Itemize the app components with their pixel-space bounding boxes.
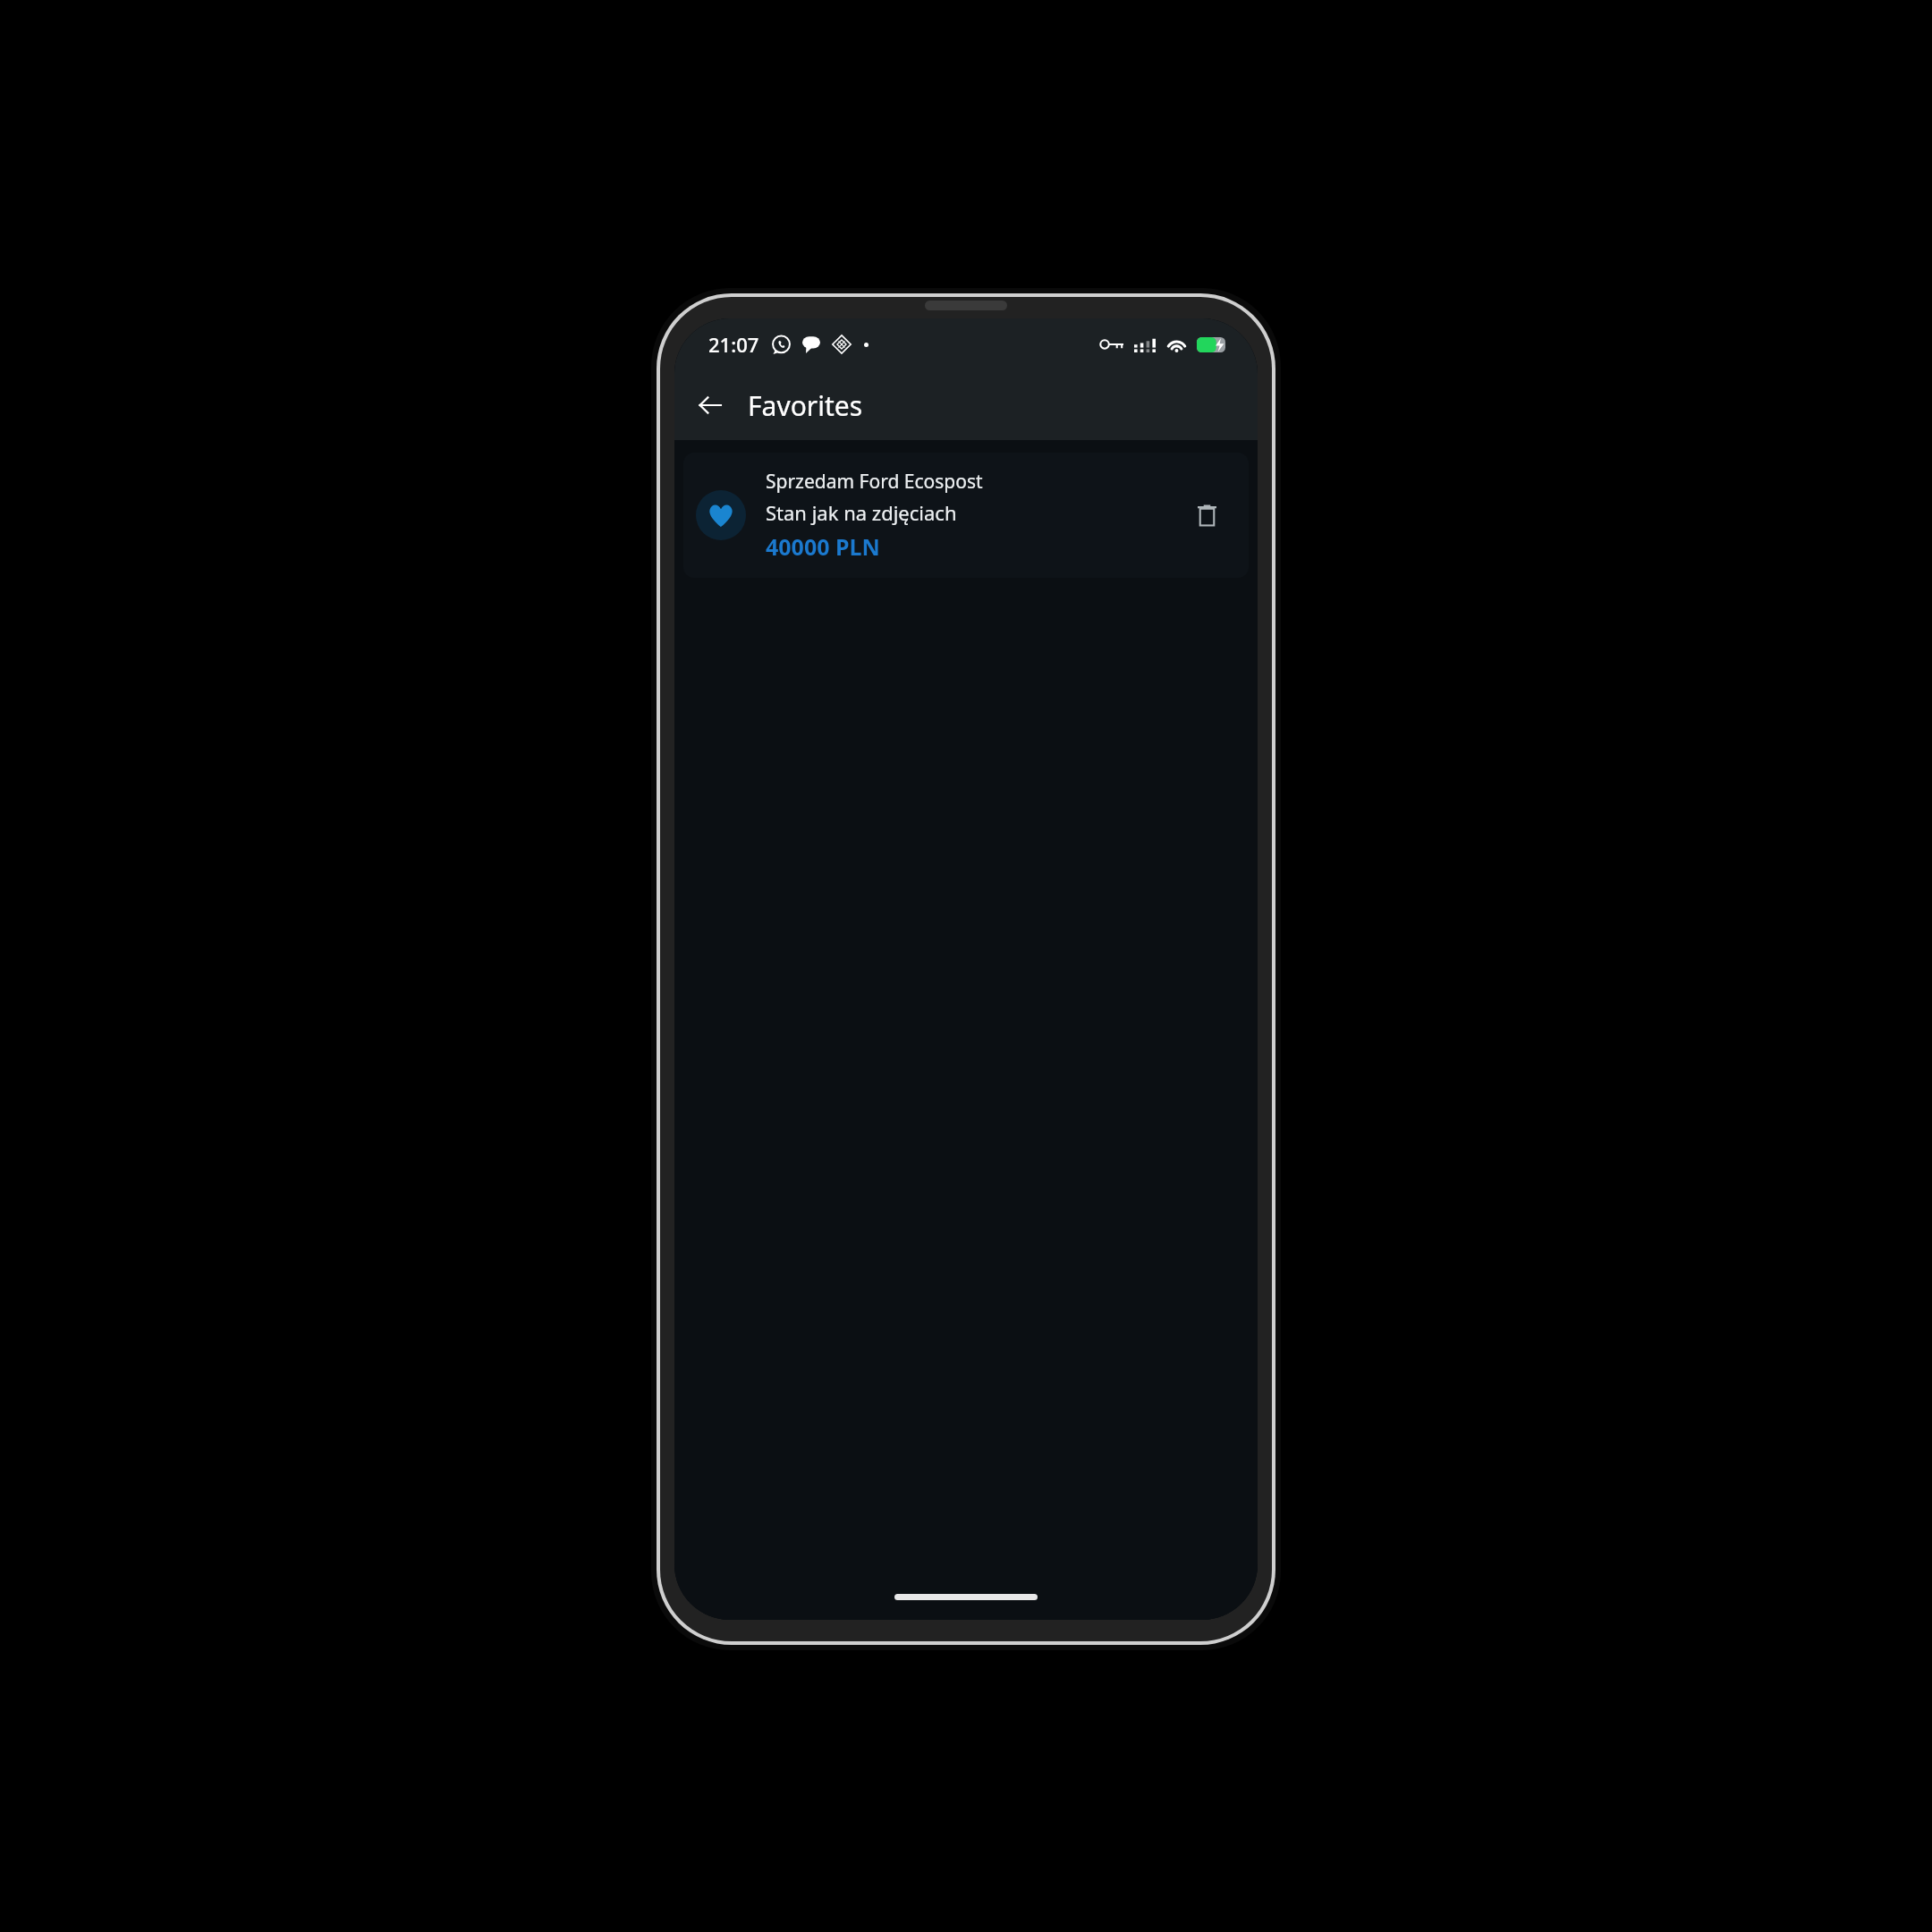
staticText: Stan jak na zdjęciach	[766, 499, 957, 526]
button[interactable]: Back	[685, 380, 735, 430]
staticText: 40000 PLN	[766, 531, 880, 562]
button[interactable]: Sprzedam Ford Ecospost	[683, 453, 1249, 578]
staticText: Sprzedam Ford Ecospost	[766, 469, 983, 495]
button[interactable]: Delete	[1182, 491, 1231, 539]
staticText: 21:07	[708, 331, 759, 358]
staticText: Favorites	[748, 387, 863, 424]
